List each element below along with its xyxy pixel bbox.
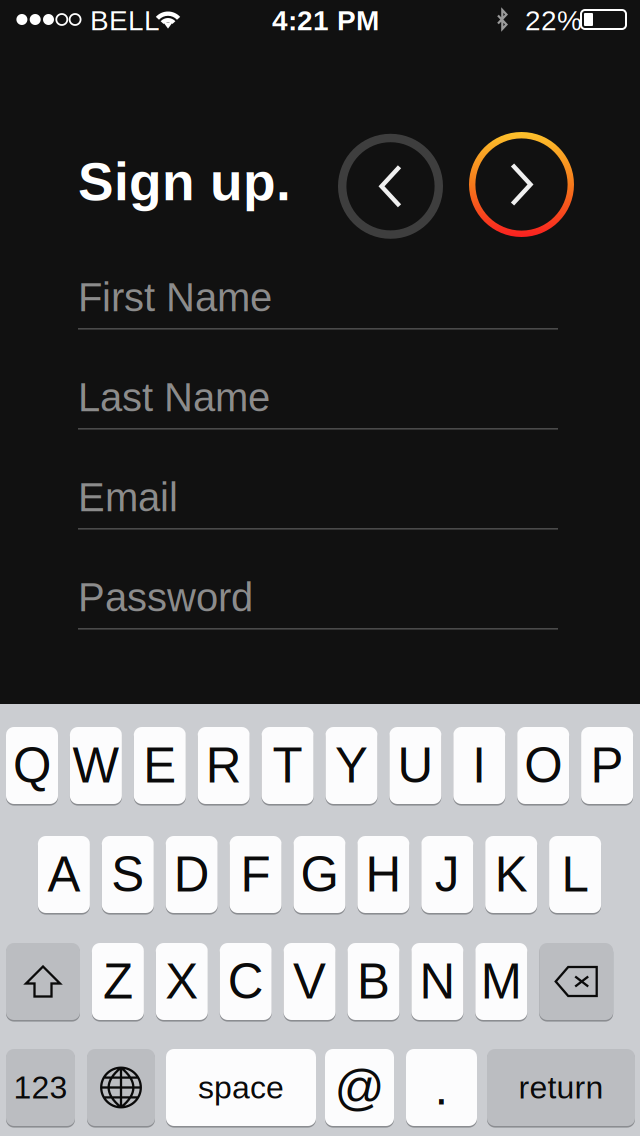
staticText: Last Name (78, 375, 270, 420)
staticText: L (562, 847, 589, 902)
button[interactable]: . (406, 1049, 477, 1126)
staticText: M (481, 954, 522, 1009)
staticText: Z (103, 954, 133, 1009)
staticText: H (365, 847, 401, 902)
staticText: I (472, 738, 486, 793)
button[interactable]: O (517, 727, 569, 804)
staticText: Sign up. (78, 152, 291, 212)
staticText: 22% (525, 5, 582, 36)
staticText: G (300, 847, 338, 902)
button[interactable]: Z (92, 943, 144, 1020)
staticText: BELL (90, 5, 160, 36)
staticText: Password (78, 575, 253, 620)
button[interactable]: Last Name (78, 344, 558, 444)
staticText: A (47, 847, 80, 902)
button[interactable]: R (198, 727, 250, 804)
button[interactable]: G (293, 836, 345, 913)
staticText: F (241, 847, 271, 902)
staticText: W (72, 738, 119, 793)
staticText: Q (13, 738, 51, 793)
button[interactable]: N (411, 943, 463, 1020)
button[interactable]: U (389, 727, 441, 804)
button[interactable]: @ (325, 1049, 394, 1126)
staticText: Y (335, 738, 368, 793)
staticText: V (293, 954, 326, 1009)
button[interactable]: T (262, 727, 314, 804)
button[interactable]: space (166, 1049, 316, 1126)
staticText: Email (78, 475, 178, 520)
staticText: O (524, 738, 562, 793)
button[interactable]: return (487, 1049, 635, 1126)
button[interactable]: I (453, 727, 505, 804)
staticText: K (495, 847, 528, 902)
staticText: C (228, 954, 264, 1009)
staticText: D (174, 847, 210, 902)
staticText: N (419, 954, 455, 1009)
button[interactable]: L (549, 836, 601, 913)
button[interactable]: Q (6, 727, 58, 804)
button[interactable]: Next keyboard (87, 1049, 155, 1126)
button[interactable]: 123 (6, 1049, 75, 1126)
button[interactable]: J (421, 836, 473, 913)
button[interactable]: Y (325, 727, 377, 804)
button[interactable]: Password (78, 544, 558, 644)
button[interactable]: B (347, 943, 399, 1020)
button[interactable]: Shift (6, 943, 80, 1020)
staticText: . (434, 1060, 448, 1115)
staticText: X (165, 954, 198, 1009)
staticText: T (273, 738, 303, 793)
staticText: U (397, 738, 433, 793)
button[interactable]: K (485, 836, 537, 913)
button[interactable]: V (284, 943, 336, 1020)
staticText: First Name (78, 275, 272, 320)
button[interactable]: D (166, 836, 218, 913)
staticText: 123 (13, 1070, 67, 1105)
staticText: S (111, 847, 144, 902)
button[interactable]: Back (342, 138, 439, 235)
staticText: @ (334, 1060, 384, 1115)
staticText: R (206, 738, 242, 793)
button[interactable]: A (38, 836, 90, 913)
button[interactable]: P (581, 727, 633, 804)
button[interactable]: H (357, 836, 409, 913)
button[interactable]: Next (469, 132, 574, 237)
button[interactable]: M (475, 943, 527, 1020)
button[interactable]: X (156, 943, 208, 1020)
button[interactable]: F (230, 836, 282, 913)
staticText: B (357, 954, 390, 1009)
button[interactable]: Email (78, 444, 558, 544)
staticText: P (591, 738, 624, 793)
staticText: return (518, 1070, 603, 1105)
button[interactable]: S (102, 836, 154, 913)
staticText: space (198, 1070, 284, 1105)
staticText: J (435, 847, 460, 902)
button[interactable]: E (134, 727, 186, 804)
staticText: 4:21 PM (272, 5, 379, 36)
button[interactable]: C (220, 943, 272, 1020)
button[interactable]: W (70, 727, 122, 804)
button[interactable]: First Name (78, 244, 558, 344)
button[interactable]: Delete (539, 943, 613, 1020)
staticText: E (143, 738, 176, 793)
